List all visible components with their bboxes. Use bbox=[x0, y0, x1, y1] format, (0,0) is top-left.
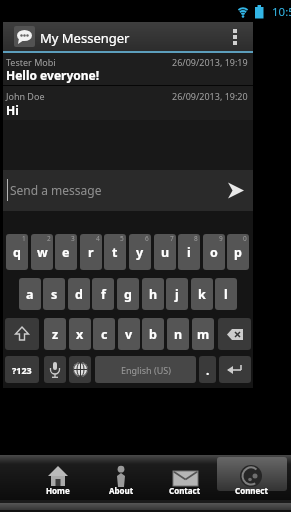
button[interactable]: p bbox=[227, 234, 249, 270]
button[interactable] bbox=[219, 170, 253, 211]
staticText: h bbox=[149, 286, 158, 303]
staticText: y bbox=[136, 244, 144, 261]
staticText: z bbox=[52, 326, 59, 343]
button[interactable] bbox=[44, 356, 66, 383]
staticText: m bbox=[197, 326, 210, 343]
staticText: 9 bbox=[219, 234, 223, 243]
staticText: p bbox=[234, 244, 242, 261]
button[interactable]: Home bbox=[25, 456, 91, 499]
button[interactable]: s bbox=[43, 278, 65, 310]
staticText: ?123 bbox=[12, 364, 32, 376]
button[interactable] bbox=[219, 356, 251, 383]
staticText: 6 bbox=[145, 234, 149, 243]
staticText: n bbox=[174, 326, 183, 343]
staticText: About bbox=[109, 485, 134, 496]
staticText: 0 bbox=[243, 234, 247, 243]
staticText: q bbox=[13, 244, 21, 261]
button[interactable]: v bbox=[118, 318, 140, 350]
button[interactable]: u bbox=[154, 234, 176, 270]
staticText: 10:56 bbox=[272, 4, 291, 20]
button[interactable] bbox=[69, 356, 91, 383]
staticText: b bbox=[149, 326, 157, 343]
staticText: My Messenger bbox=[40, 29, 130, 47]
button[interactable] bbox=[218, 318, 251, 350]
button[interactable]: r bbox=[80, 234, 102, 270]
staticText: John Doe bbox=[6, 90, 45, 102]
staticText: 8 bbox=[194, 234, 198, 243]
staticText: Hello everyone! bbox=[6, 67, 100, 83]
button[interactable]: Tester Mobi bbox=[3, 53, 253, 85]
button[interactable]: f bbox=[92, 278, 114, 310]
staticText: a bbox=[26, 286, 34, 303]
staticText: 5 bbox=[120, 234, 124, 243]
staticText: Home bbox=[46, 485, 70, 496]
button[interactable]: y bbox=[129, 234, 151, 270]
staticText: Hi bbox=[6, 102, 19, 118]
button[interactable]: w bbox=[31, 234, 53, 270]
staticText: 2 bbox=[47, 234, 51, 243]
button[interactable] bbox=[5, 318, 39, 350]
button[interactable]: English (US) bbox=[95, 356, 196, 383]
button[interactable]: o bbox=[203, 234, 225, 270]
staticText: 3 bbox=[71, 234, 75, 243]
button[interactable]: n bbox=[167, 318, 189, 350]
staticText: u bbox=[161, 244, 170, 261]
button[interactable]: l bbox=[215, 278, 237, 310]
staticText: f bbox=[101, 286, 106, 303]
button[interactable]: z bbox=[44, 318, 66, 350]
button[interactable]: q bbox=[6, 234, 28, 270]
staticText: x bbox=[76, 326, 84, 343]
staticText: 26/09/2013, 19:20 bbox=[172, 90, 248, 102]
staticText: o bbox=[210, 244, 218, 261]
button[interactable]: Contact bbox=[152, 456, 218, 499]
staticText: 26/09/2013, 19:19 bbox=[172, 56, 248, 68]
button[interactable] bbox=[14, 26, 35, 47]
staticText: Tester Mobi bbox=[6, 56, 56, 68]
button[interactable]: h bbox=[142, 278, 164, 310]
staticText: t bbox=[112, 244, 118, 261]
staticText: English (US) bbox=[121, 364, 171, 376]
button[interactable]: Send a message bbox=[3, 170, 253, 211]
staticText: l bbox=[224, 286, 228, 303]
staticText: r bbox=[88, 244, 94, 261]
staticText: k bbox=[198, 286, 206, 303]
button[interactable]: j bbox=[166, 278, 188, 310]
button[interactable]: e bbox=[55, 234, 77, 270]
button[interactable]: t bbox=[104, 234, 126, 270]
staticText: g bbox=[124, 286, 132, 303]
staticText: v bbox=[125, 326, 133, 343]
button[interactable]: b bbox=[142, 318, 164, 350]
staticText: d bbox=[75, 286, 83, 303]
button[interactable]: g bbox=[117, 278, 139, 310]
button[interactable]: ?123 bbox=[5, 356, 39, 383]
staticText: c bbox=[101, 326, 108, 343]
staticText: . bbox=[206, 362, 210, 378]
staticText: w bbox=[37, 244, 48, 261]
button[interactable]: a bbox=[19, 278, 41, 310]
button[interactable]: m bbox=[192, 318, 214, 350]
staticText: Connect bbox=[235, 485, 268, 496]
button[interactable]: i bbox=[178, 234, 200, 270]
staticText: 4 bbox=[96, 234, 100, 243]
staticText: s bbox=[51, 286, 58, 303]
button[interactable]: . bbox=[199, 356, 216, 383]
staticText: Send a message bbox=[10, 182, 102, 198]
staticText: e bbox=[62, 244, 70, 261]
button[interactable]: John Doe bbox=[3, 86, 253, 120]
staticText: j bbox=[175, 286, 179, 303]
staticText: 7 bbox=[170, 234, 174, 243]
button[interactable]: k bbox=[191, 278, 213, 310]
button[interactable]: x bbox=[69, 318, 91, 350]
button[interactable]: d bbox=[68, 278, 90, 310]
button[interactable]: c bbox=[93, 318, 115, 350]
staticText: Contact bbox=[169, 485, 201, 496]
button[interactable] bbox=[225, 22, 253, 51]
staticText: 1 bbox=[22, 234, 26, 243]
button[interactable]: Connect bbox=[218, 456, 284, 499]
staticText: i bbox=[187, 244, 191, 261]
button[interactable]: About bbox=[88, 456, 154, 499]
